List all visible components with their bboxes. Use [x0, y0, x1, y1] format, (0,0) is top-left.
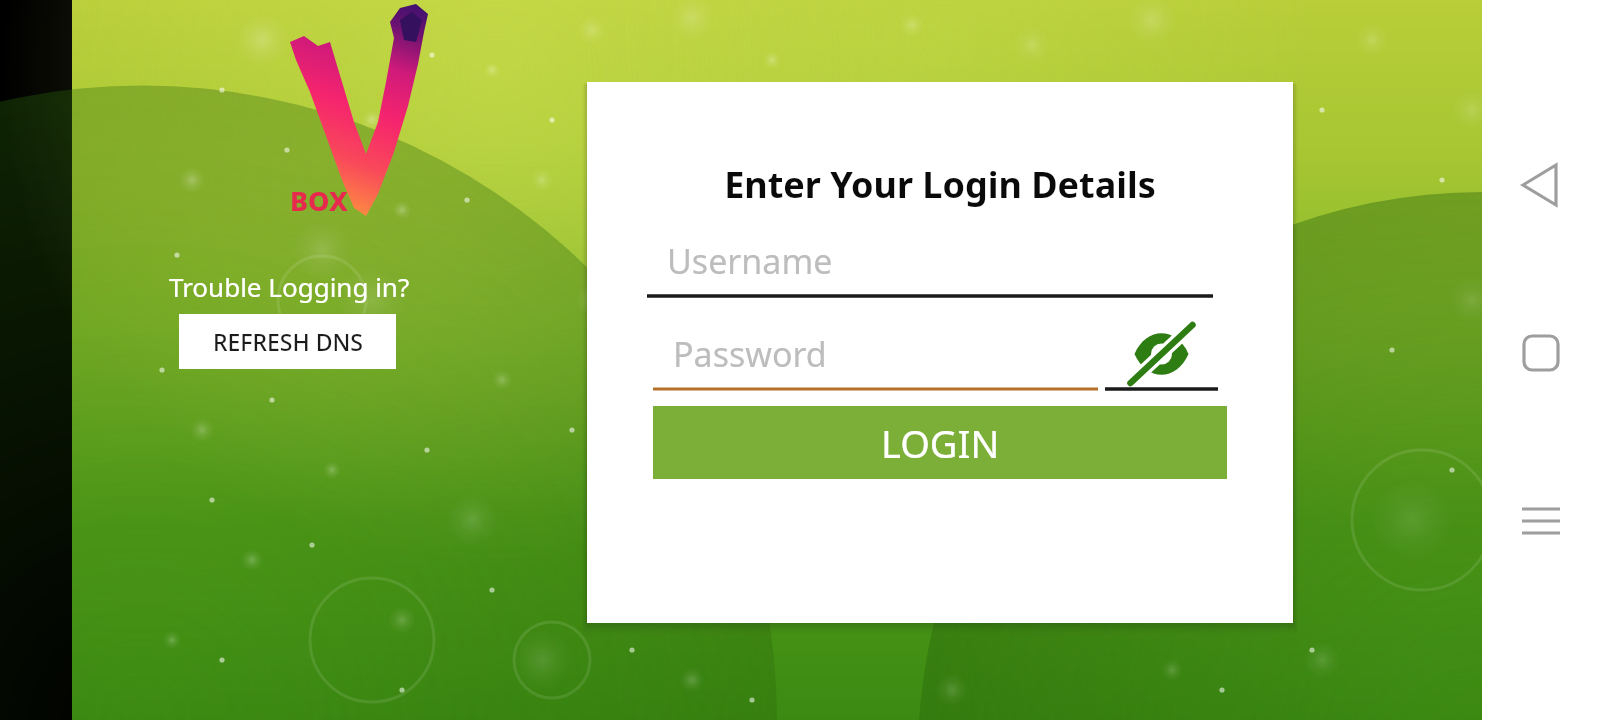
button[interactable]: LOGIN	[653, 406, 1227, 479]
staticText: Password	[673, 331, 827, 377]
button[interactable]: Home	[1506, 318, 1576, 388]
staticText: Enter Your Login Details	[587, 160, 1293, 210]
staticText: Trouble Logging in?	[169, 269, 410, 304]
staticText: BOX	[290, 182, 348, 219]
staticText: LOGIN	[881, 417, 1000, 469]
staticText: Username	[667, 238, 833, 284]
staticText: REFRESH DNS	[213, 326, 363, 357]
button[interactable]: Password	[653, 325, 1098, 391]
button[interactable]: Username	[647, 232, 1213, 298]
button[interactable]: REFRESH DNS	[179, 314, 396, 369]
button[interactable]: Recent apps	[1506, 486, 1576, 556]
button[interactable]: Show password	[1105, 325, 1218, 391]
button[interactable]: Back	[1506, 150, 1576, 220]
